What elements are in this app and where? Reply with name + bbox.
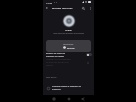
- button[interactable]: Bloquer les boîtes de dialogue de cookie…: [43, 50, 94, 59]
- staticText: Pourquoi utiliser le bloqueur de publici…: [52, 85, 82, 91]
- button[interactable]: Accepter automatiquement les boîtes de d…: [43, 58, 94, 67]
- button[interactable]: Pubs bloquées: [46, 40, 91, 52]
- staticText: Activé: [65, 29, 72, 32]
- button[interactable]: Toggle ad blocker: [62, 14, 76, 28]
- button[interactable]: Pourquoi utiliser le bloqueur de publici…: [43, 85, 94, 91]
- button[interactable]: Home: [66, 96, 72, 102]
- button[interactable]: Search: [80, 5, 86, 11]
- staticText: 37 613: [67, 46, 75, 49]
- staticText: Blocage des pubs: [52, 6, 73, 9]
- staticText: 14:32: [46, 1, 53, 4]
- button[interactable]: Back: [80, 96, 86, 102]
- button[interactable]: Recents: [51, 96, 57, 102]
- button[interactable]: More options: [87, 5, 93, 11]
- staticText: Accepter automatiquement les boîtes de d…: [46, 58, 73, 67]
- staticText: Votre vitesse de navigation est amélioré…: [53, 32, 84, 34]
- staticText: Bloquer les boîtes de dialogue de cookie…: [46, 52, 73, 58]
- button[interactable]: Back: [44, 5, 50, 11]
- staticText: Pubs bloquées: [63, 43, 74, 45]
- staticText: Sites exclus: [46, 76, 57, 79]
